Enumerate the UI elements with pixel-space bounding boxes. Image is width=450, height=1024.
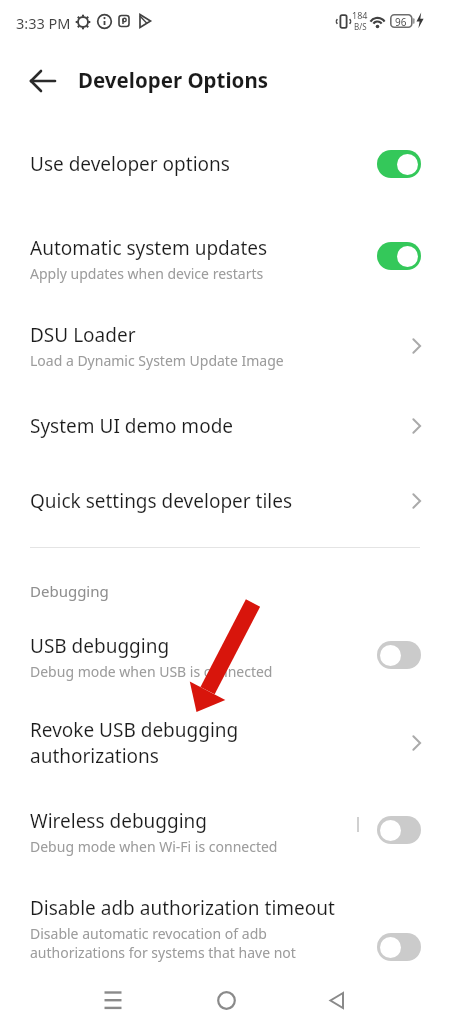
staticText: Disable automatic revocation of adb (30, 924, 267, 943)
staticText: 96 (395, 15, 407, 29)
button[interactable] (377, 641, 421, 669)
staticText: Apply updates when device restarts (30, 264, 264, 283)
staticText: Debugging (30, 581, 109, 601)
staticText: Load a Dynamic System Update Image (30, 351, 284, 370)
staticText: Debug mode when USB is connected (30, 662, 273, 681)
staticText: 184 (352, 9, 368, 21)
button[interactable] (377, 816, 421, 844)
staticText: Use developer options (30, 151, 230, 177)
button[interactable]: Revoke USB debugging (0, 700, 450, 786)
button[interactable]: Developer Options (78, 66, 269, 94)
staticText: DSU Loader (30, 322, 136, 348)
button[interactable] (377, 933, 421, 961)
button[interactable]: Wireless debugging (0, 789, 450, 875)
staticText: System UI demo mode (30, 413, 234, 439)
staticText: Wireless debugging (30, 808, 208, 834)
button[interactable] (96, 983, 130, 1017)
staticText: USB debugging (30, 633, 170, 659)
staticText: authorizations for systems that have not (30, 943, 296, 962)
staticText: Revoke USB debugging (30, 717, 239, 743)
staticText: Debug mode when Wi-Fi is connected (30, 837, 278, 856)
staticText: Quick settings developer tiles (30, 488, 293, 514)
staticText: Developer Options (78, 66, 269, 94)
button[interactable] (22, 61, 64, 101)
button[interactable]: Use developer options (0, 130, 450, 198)
button[interactable] (377, 242, 421, 270)
staticText: Automatic system updates (30, 235, 268, 261)
button[interactable]: Disable adb authorization timeout (0, 876, 450, 980)
button[interactable] (377, 150, 421, 178)
button[interactable] (319, 983, 353, 1017)
staticText: 3:33 PM (16, 13, 71, 33)
button[interactable]: DSU Loader (0, 302, 450, 390)
button[interactable]: Automatic system updates (0, 215, 450, 303)
button[interactable]: USB debugging (0, 614, 450, 700)
button[interactable]: Quick settings developer tiles (0, 467, 450, 535)
button[interactable]: System UI demo mode (0, 392, 450, 460)
staticText: authorizations (30, 743, 159, 769)
staticText: Disable adb authorization timeout (30, 895, 335, 921)
staticText: B/S (354, 21, 367, 32)
button[interactable] (209, 983, 243, 1017)
